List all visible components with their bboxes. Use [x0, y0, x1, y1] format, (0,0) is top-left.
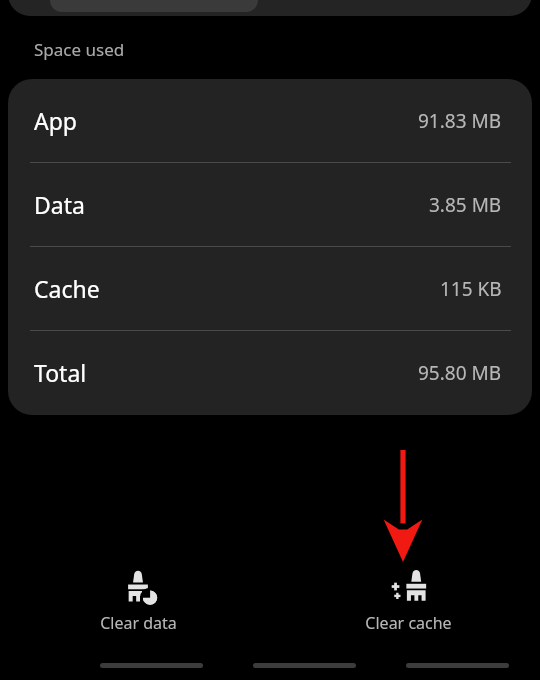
- staticText: 91.83 MB: [418, 108, 502, 134]
- staticText: Clear cache: [365, 612, 452, 634]
- staticText: 115 KB: [440, 276, 502, 302]
- staticText: 95.80 MB: [418, 360, 502, 386]
- staticText: Cache: [34, 273, 100, 304]
- button[interactable]: Cache: [8, 247, 532, 330]
- staticText: Total: [34, 357, 87, 388]
- button[interactable]: Clear data: [0, 566, 276, 646]
- button[interactable]: App: [8, 79, 532, 162]
- button[interactable]: Clear cache: [276, 566, 540, 646]
- staticText: Data: [34, 189, 85, 220]
- staticText: App: [34, 105, 77, 136]
- staticText: Clear data: [100, 612, 177, 634]
- button[interactable]: Data: [8, 163, 532, 246]
- staticText: Space used: [34, 38, 125, 61]
- staticText: 3.85 MB: [429, 192, 502, 218]
- button[interactable]: Total: [8, 331, 532, 414]
